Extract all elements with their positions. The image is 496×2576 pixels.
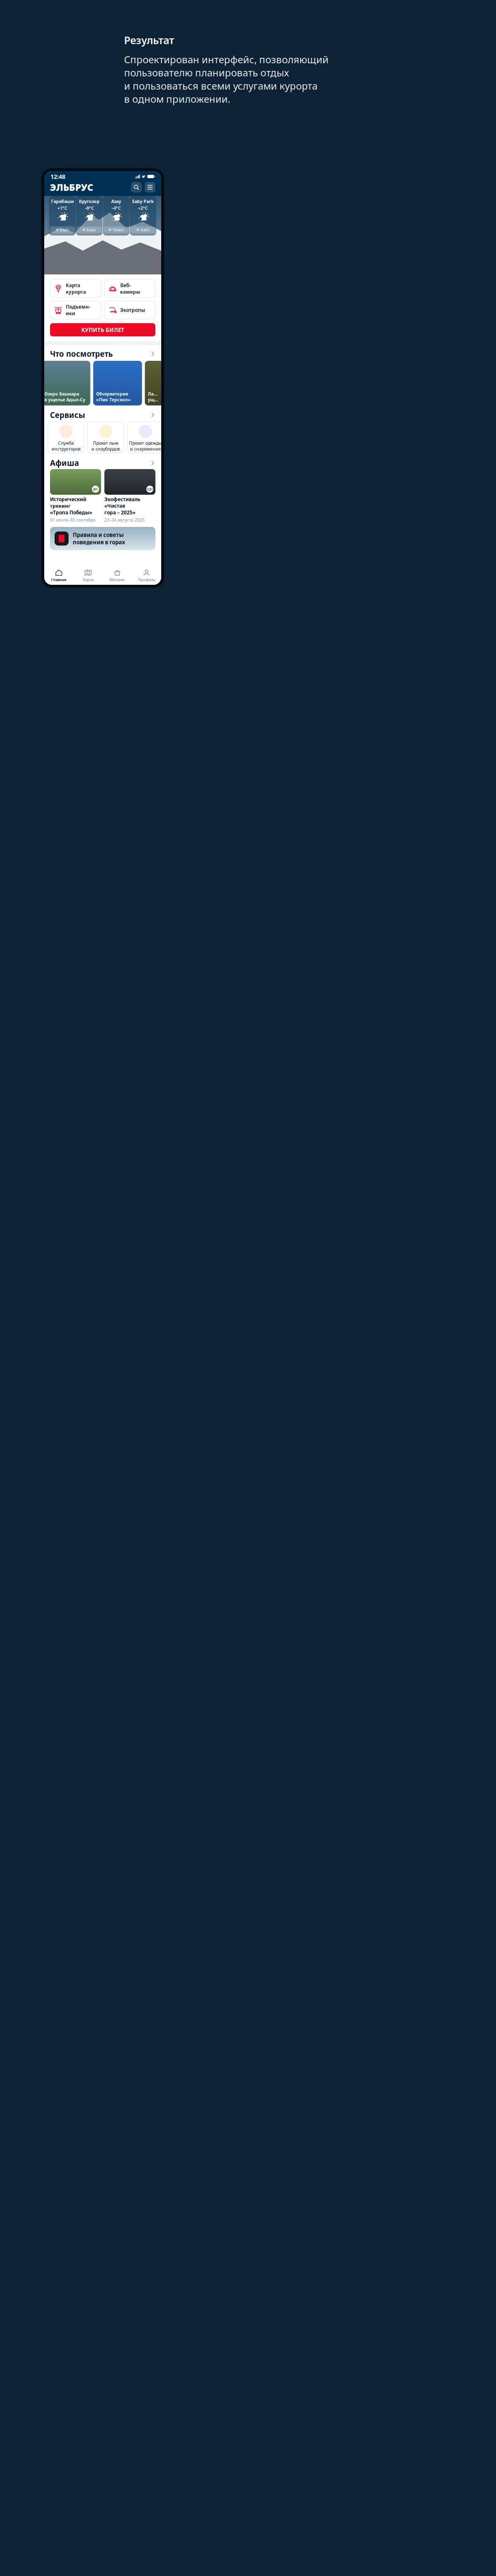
staticText: 01 июля–30 сентября (50, 517, 95, 523)
button[interactable]: Экотропы (104, 301, 155, 319)
staticText: Подъемники (66, 303, 91, 317)
button[interactable]: Ла… ущ… (145, 361, 170, 405)
button[interactable]: 12+ (104, 469, 155, 523)
staticText: Главная (51, 577, 67, 582)
button[interactable]: Прокат одежды и снаряжения (127, 422, 163, 453)
staticText: КУПИТЬ БИЛЕТ (81, 326, 124, 333)
staticText: 3 м/с (60, 227, 69, 232)
staticText: 4 м/с (141, 227, 150, 232)
button[interactable]: Все (150, 460, 155, 466)
staticText: 12:48 (50, 172, 65, 181)
staticText: 10 м/с (113, 227, 124, 232)
button[interactable]: Карта курорта (50, 279, 101, 298)
staticText: Афиша (50, 458, 79, 468)
button[interactable]: Магазин (103, 567, 132, 585)
staticText: Магазин (109, 577, 125, 582)
button[interactable]: Обсерватория «Пик Терскол» (93, 361, 142, 405)
staticText: 12+ (147, 487, 153, 492)
staticText: Правила и советы поведения в горах (73, 531, 125, 546)
button[interactable]: Главная (44, 567, 73, 585)
staticText: 6 м/с (87, 227, 96, 232)
staticText: 0+ (93, 487, 98, 492)
button[interactable]: КУПИТЬ БИЛЕТ (50, 323, 155, 336)
staticText: –4°C (111, 205, 121, 211)
staticText: +2°C (138, 205, 148, 211)
staticText: 23–24 августа 2025 (104, 517, 144, 523)
staticText: Служба инструкторов (51, 440, 80, 452)
staticText: –8°C (85, 205, 94, 211)
staticText: Профиль (138, 577, 155, 582)
button[interactable]: Все (150, 351, 155, 356)
staticText: Кругозор (79, 198, 100, 204)
button[interactable]: Меню (145, 182, 155, 193)
button[interactable]: Прокат лыж и сноубордов (87, 422, 124, 453)
staticText: ЭЛЬБРУС (50, 181, 93, 193)
staticText: Прокат лыж и сноубордов (91, 440, 120, 452)
staticText: Озеро Башкара в ущелье Адыл-Су (44, 391, 85, 403)
button[interactable]: Все (150, 412, 155, 418)
button[interactable]: Поиск (131, 182, 142, 193)
button[interactable]: Веб-камеры (104, 279, 155, 298)
staticText: Прокат одежды и снаряжения (129, 440, 162, 452)
button[interactable]: Карта (73, 567, 103, 585)
staticText: Результат (124, 33, 174, 47)
staticText: Гарабаши (51, 198, 74, 204)
staticText: +1°C (57, 205, 67, 211)
button[interactable]: 0+ (50, 469, 101, 523)
staticText: Исторический трекинг «Тропа Победы» (50, 496, 92, 516)
staticText: Веб-камеры (120, 282, 140, 295)
button[interactable]: Служба инструкторов (48, 422, 84, 453)
staticText: Карта (83, 577, 93, 582)
staticText: Что посмотреть (50, 349, 113, 359)
button[interactable]: Профиль (132, 567, 161, 585)
staticText: Азау (111, 198, 121, 204)
staticText: Обсерватория «Пик Терскол» (96, 391, 131, 403)
button[interactable]: Подъемники (50, 301, 101, 319)
staticText: Экотропы (120, 307, 145, 313)
staticText: Спроектирован интерфейс, позволяющий пол… (124, 53, 329, 105)
staticText: Saby Park (132, 198, 154, 204)
staticText: Ла… ущ… (148, 391, 158, 403)
staticText: Сервисы (50, 410, 85, 420)
staticText: Экофестиваль «Чистая гора – 2025» (104, 496, 140, 516)
staticText: Карта курорта (66, 282, 86, 295)
button[interactable]: Озеро Башкара в ущелье Адыл-Су (42, 361, 90, 405)
